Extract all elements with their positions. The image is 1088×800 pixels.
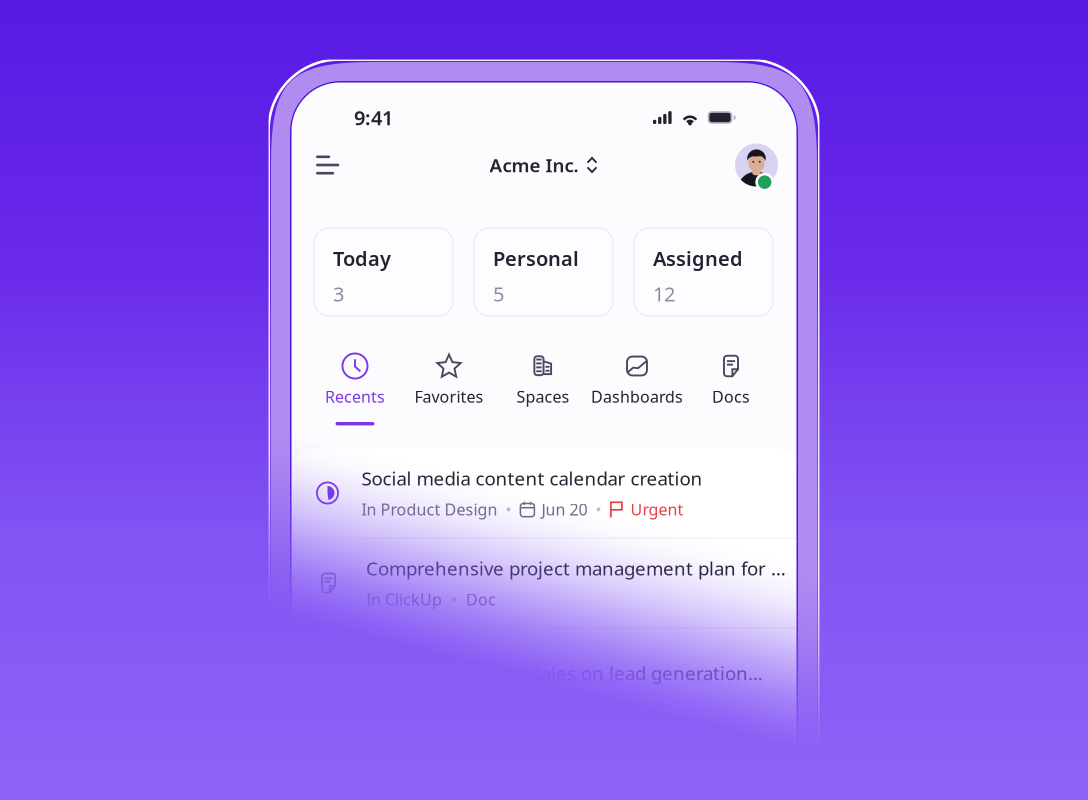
- staticText: Recents: [325, 386, 385, 407]
- staticText: Comprehensive project management plan fo…: [366, 556, 794, 581]
- staticText: In Product Design: [361, 499, 497, 520]
- staticText: Jun 20: [541, 499, 587, 520]
- staticText: Spaces: [516, 386, 569, 407]
- staticText: Personal: [493, 245, 579, 272]
- staticText: Acme Inc.: [489, 153, 578, 177]
- staticText: 9:41: [354, 104, 393, 131]
- button[interactable]: Spaces: [496, 352, 590, 412]
- button[interactable]: Acme Inc.: [479, 145, 607, 185]
- staticText: In ClickUp: [366, 589, 442, 610]
- button[interactable]: Menu: [307, 144, 349, 185]
- button[interactable]: Assigned: [634, 228, 773, 316]
- button[interactable]: Recents: [308, 352, 402, 412]
- staticText: Favorites: [414, 386, 483, 407]
- staticText: Social media content calendar creation: [361, 466, 702, 491]
- button[interactable]: Dashboards: [590, 352, 684, 412]
- button[interactable]: Profile: [733, 141, 780, 188]
- staticText: 12: [653, 281, 675, 307]
- button[interactable]: Docs: [684, 352, 778, 412]
- staticText: Assigned: [653, 245, 743, 272]
- button[interactable]: Collaboration with sales on lead generat…: [292, 628, 796, 718]
- staticText: 5: [493, 281, 504, 307]
- staticText: Urgent: [630, 499, 683, 520]
- button[interactable]: Personal: [474, 228, 613, 316]
- button[interactable]: Today: [314, 228, 453, 316]
- staticText: Doc: [466, 589, 496, 610]
- staticText: Collaboration with sales on lead generat…: [366, 661, 763, 685]
- staticText: 3: [333, 281, 344, 307]
- button[interactable]: Comprehensive project management plan fo…: [292, 538, 796, 628]
- button[interactable]: Favorites: [402, 352, 496, 412]
- staticText: Dashboards: [591, 386, 683, 407]
- button[interactable]: Social media content calendar creation: [292, 448, 796, 538]
- staticText: Today: [333, 245, 391, 272]
- staticText: Docs: [712, 386, 750, 407]
